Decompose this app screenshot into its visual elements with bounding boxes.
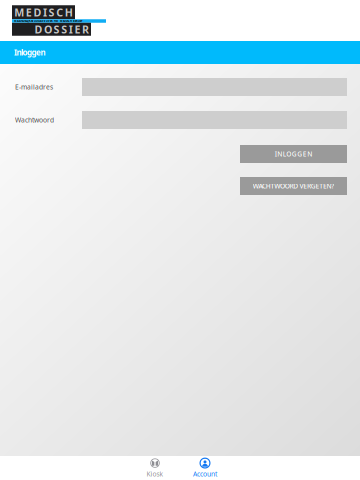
staticText: Inloggen [14, 47, 45, 58]
staticText: Kiosk [146, 470, 163, 478]
button[interactable]: Account [180, 456, 230, 480]
staticText: INLOGGEN [275, 150, 312, 158]
staticText: WACHTWOORD VERGETEN? [253, 182, 334, 190]
staticText: MEDISCH [14, 5, 73, 19]
button[interactable]: Kiosk [130, 456, 180, 480]
staticText: E-mailadres [15, 83, 53, 91]
staticText: MAANDELIJKSE UITGAVE OVER HET MEDISCH BE… [14, 19, 83, 23]
staticText: DOSSIER [34, 22, 89, 36]
staticText: Wachtwoord [15, 116, 54, 124]
button[interactable]: INLOGGEN [240, 145, 347, 163]
button[interactable]: WACHTWOORD VERGETEN? [240, 177, 347, 195]
staticText: Account [193, 470, 217, 478]
